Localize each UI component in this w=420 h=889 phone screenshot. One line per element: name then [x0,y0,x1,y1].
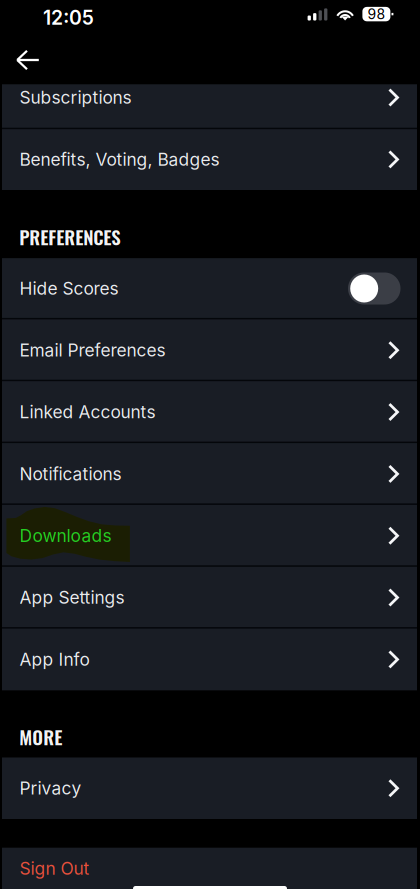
staticText: MORE [19,723,62,751]
staticText: Linked Accounts [19,401,155,422]
button[interactable]: Back [12,40,58,80]
button[interactable]: App Settings [2,567,417,628]
button[interactable]: Hide Scores [2,258,417,319]
staticText: 98 [367,6,385,22]
staticText: Sign Out [19,858,89,879]
button[interactable]: Linked Accounts [2,381,417,443]
staticText: PREFERENCES [19,223,120,251]
button[interactable]: Privacy [2,757,417,819]
button[interactable]: Notifications [2,443,417,505]
button[interactable]: App Info [2,628,417,690]
button[interactable]: Downloads [2,505,417,567]
button[interactable]: Benefits, Voting, Badges [2,128,417,190]
staticText: Notifications [19,463,121,484]
staticText: Downloads [19,525,111,546]
staticText: App Info [19,649,89,670]
button[interactable]: Sign Out [2,848,417,889]
staticText: Benefits, Voting, Badges [19,149,219,170]
staticText: Subscriptions [19,87,131,108]
button[interactable]: Subscriptions [2,67,417,128]
staticText: Hide Scores [19,278,118,299]
button[interactable]: Email Preferences [2,319,417,381]
staticText: 12:05 [43,6,94,29]
staticText: Email Preferences [19,340,165,361]
staticText: App Settings [19,587,124,608]
staticText: Privacy [19,778,81,799]
